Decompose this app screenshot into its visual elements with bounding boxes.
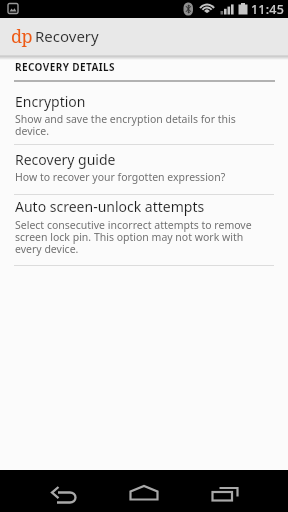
button[interactable]: dp — [0, 18, 288, 56]
button[interactable] — [96, 470, 192, 512]
staticText: How to recover your forgotten expression… — [15, 170, 226, 184]
staticText: Select consecutive incorrect attempts to… — [15, 218, 252, 256]
staticText: Recovery guide — [15, 150, 116, 169]
staticText: Show and save the encryption details for… — [15, 112, 236, 138]
staticText: 11:45 — [251, 1, 285, 18]
button[interactable] — [192, 470, 288, 512]
staticText: Recovery — [35, 26, 99, 46]
button[interactable]: Auto screen-unlock attempts — [0, 195, 288, 265]
button[interactable]: Recovery guide — [0, 145, 288, 194]
button[interactable]: Encryption — [0, 82, 288, 144]
button[interactable] — [0, 470, 96, 512]
staticText: dp — [11, 24, 33, 49]
staticText: RECOVERY DETAILS — [15, 60, 116, 74]
staticText: Auto screen-unlock attempts — [15, 197, 205, 216]
staticText: Encryption — [15, 92, 86, 111]
